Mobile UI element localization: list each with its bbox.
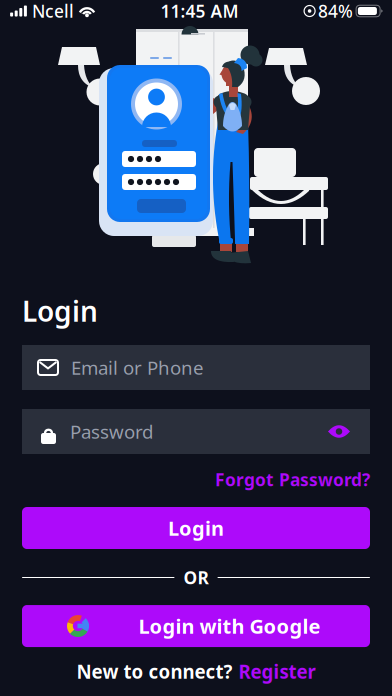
staticText: Forgot Password? bbox=[215, 468, 370, 491]
staticText: New to connect? bbox=[76, 659, 232, 684]
button[interactable]: Login bbox=[0, 507, 392, 549]
staticText: Password bbox=[70, 419, 153, 444]
staticText: 84% bbox=[318, 0, 353, 22]
staticText: Register bbox=[238, 659, 315, 684]
staticText: Login bbox=[22, 292, 98, 330]
button[interactable]: Register bbox=[238, 659, 315, 684]
button[interactable]: Forgot Password? bbox=[215, 468, 370, 491]
staticText: Ncell bbox=[32, 0, 74, 22]
staticText: 11:45 AM bbox=[161, 0, 239, 22]
staticText: Email or Phone bbox=[71, 355, 204, 380]
staticText: Login bbox=[168, 515, 224, 541]
staticText: Login with Google bbox=[138, 613, 320, 639]
staticText: OR bbox=[183, 566, 208, 589]
button[interactable]: Login with Google bbox=[0, 605, 392, 647]
